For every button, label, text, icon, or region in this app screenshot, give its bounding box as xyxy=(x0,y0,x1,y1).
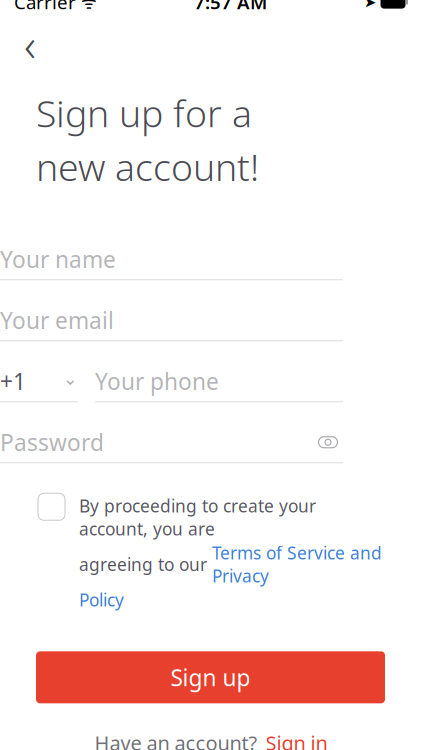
staticText: Your phone xyxy=(95,366,219,396)
button[interactable]: Show password xyxy=(313,427,343,457)
staticText: 7:57 AM xyxy=(194,0,267,14)
button[interactable]: Your phone xyxy=(95,361,343,402)
staticText: new account! xyxy=(36,142,259,191)
staticText: Your name xyxy=(0,244,116,274)
staticText: Sign up for a xyxy=(36,88,252,138)
staticText: By proceeding to create your account, yo… xyxy=(79,494,316,540)
staticText: Sign in xyxy=(265,729,327,750)
staticText: Carrier xyxy=(14,0,76,14)
staticText: Have an account? xyxy=(94,729,257,750)
button[interactable]: Back xyxy=(8,22,52,66)
staticText: agreeing to our xyxy=(79,553,212,576)
staticText: +1 xyxy=(0,366,26,396)
staticText: ➤ xyxy=(364,0,376,10)
button[interactable]: Your name xyxy=(0,239,343,300)
staticText: Your email xyxy=(0,305,114,335)
button[interactable]: Agree to terms xyxy=(38,493,65,520)
button[interactable]: Your email xyxy=(0,300,343,361)
button[interactable]: Policy xyxy=(79,588,124,611)
staticText: ᯤ xyxy=(76,0,97,14)
staticText: Password xyxy=(0,427,104,457)
button[interactable]: Sign up xyxy=(36,651,385,703)
staticText: Policy xyxy=(79,588,124,611)
button[interactable]: Sign in xyxy=(257,729,327,750)
button[interactable]: Terms of Service and Privacy xyxy=(212,541,382,587)
button[interactable]: Country code xyxy=(0,361,78,402)
staticText: ⌄ xyxy=(63,369,78,389)
staticText: ‹ xyxy=(24,14,36,74)
staticText: Sign up xyxy=(170,662,250,692)
staticText: Terms of Service and Privacy xyxy=(212,541,382,587)
